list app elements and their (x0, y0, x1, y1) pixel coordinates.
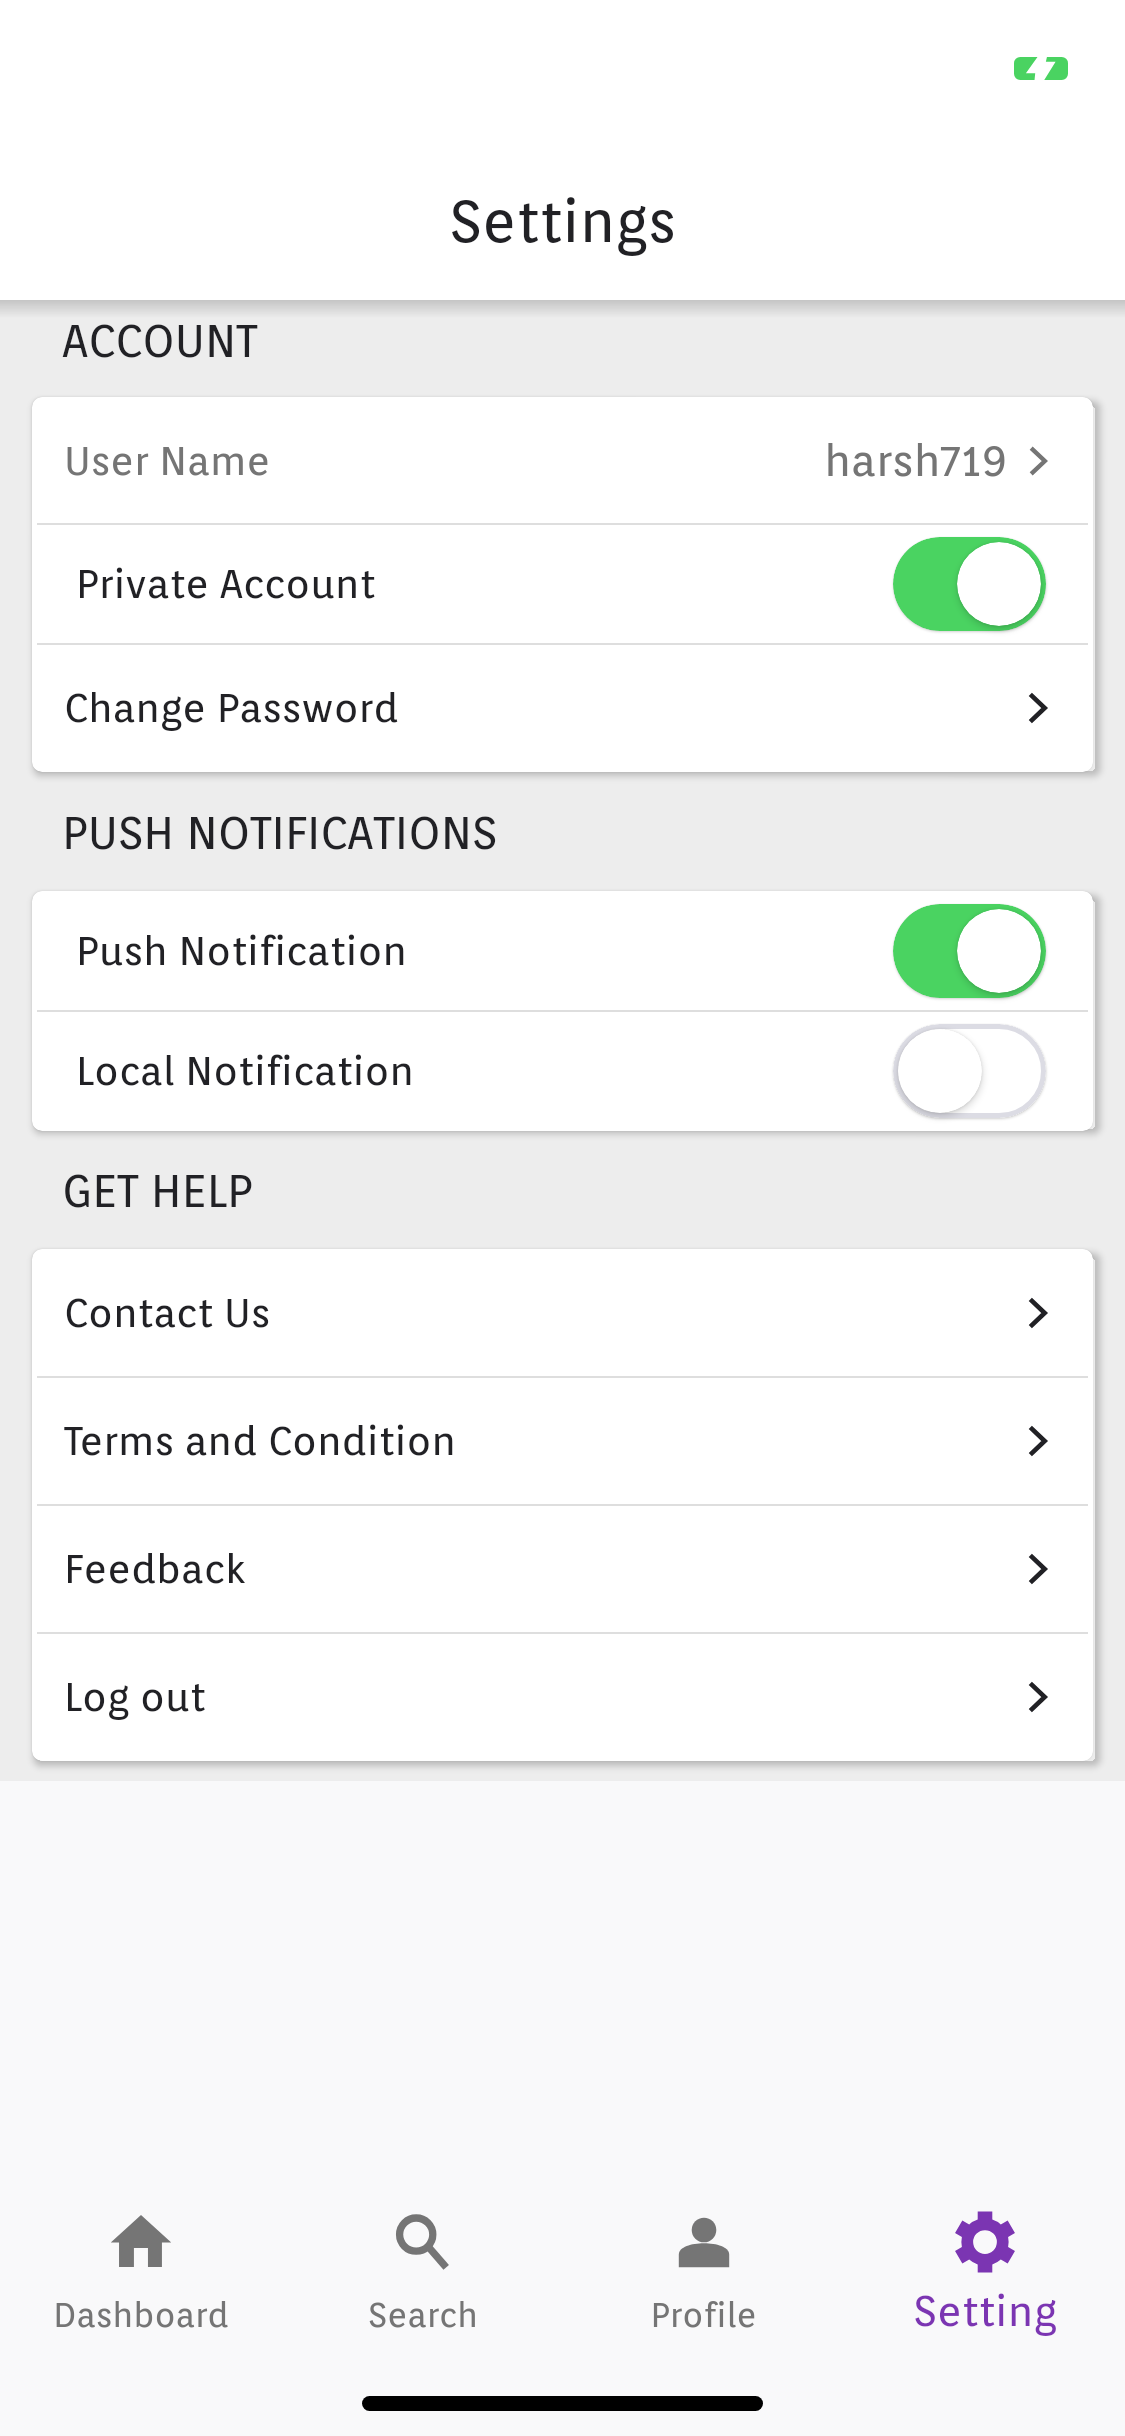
staticText: Setting (913, 2286, 1057, 2336)
button[interactable]: Contact Us (32, 1249, 1093, 1377)
staticText: Push Notification (76, 927, 407, 975)
button[interactable]: Private Account (32, 524, 1093, 644)
staticText: User Name (64, 437, 271, 485)
staticText: Change Password (64, 684, 399, 732)
button[interactable] (893, 537, 1046, 631)
other: Battery charging (1014, 57, 1068, 80)
button[interactable]: Terms and Condition (32, 1377, 1093, 1505)
button[interactable]: Feedback (32, 1505, 1093, 1633)
button[interactable]: Setting (844, 2210, 1125, 2336)
button[interactable]: Push Notification (32, 891, 1093, 1011)
button[interactable]: Local Notification (32, 1011, 1093, 1131)
staticText: Feedback (64, 1545, 246, 1593)
staticText: Dashboard (53, 2294, 229, 2335)
staticText: Profile (650, 2294, 757, 2335)
staticText: Settings (449, 186, 676, 255)
button[interactable]: Change Password (32, 644, 1093, 772)
button[interactable]: Search (282, 2210, 563, 2335)
staticText: Log out (64, 1673, 206, 1721)
staticText: Contact Us (64, 1289, 271, 1337)
staticText: Private Account (76, 560, 376, 608)
staticText: ACCOUNT (62, 314, 258, 368)
button[interactable] (893, 1024, 1046, 1118)
button[interactable]: Dashboard (0, 2210, 282, 2335)
staticText: PUSH NOTIFICATIONS (62, 806, 498, 860)
button[interactable]: Profile (563, 2210, 844, 2335)
staticText: harsh719 (824, 434, 1007, 487)
button[interactable]: User Name (32, 397, 1093, 524)
staticText: Terms and Condition (64, 1417, 456, 1465)
staticText: GET HELP (62, 1164, 253, 1218)
staticText: Local Notification (76, 1047, 414, 1095)
button[interactable]: Log out (32, 1633, 1093, 1761)
button[interactable] (893, 904, 1046, 998)
staticText: Search (368, 2294, 478, 2335)
